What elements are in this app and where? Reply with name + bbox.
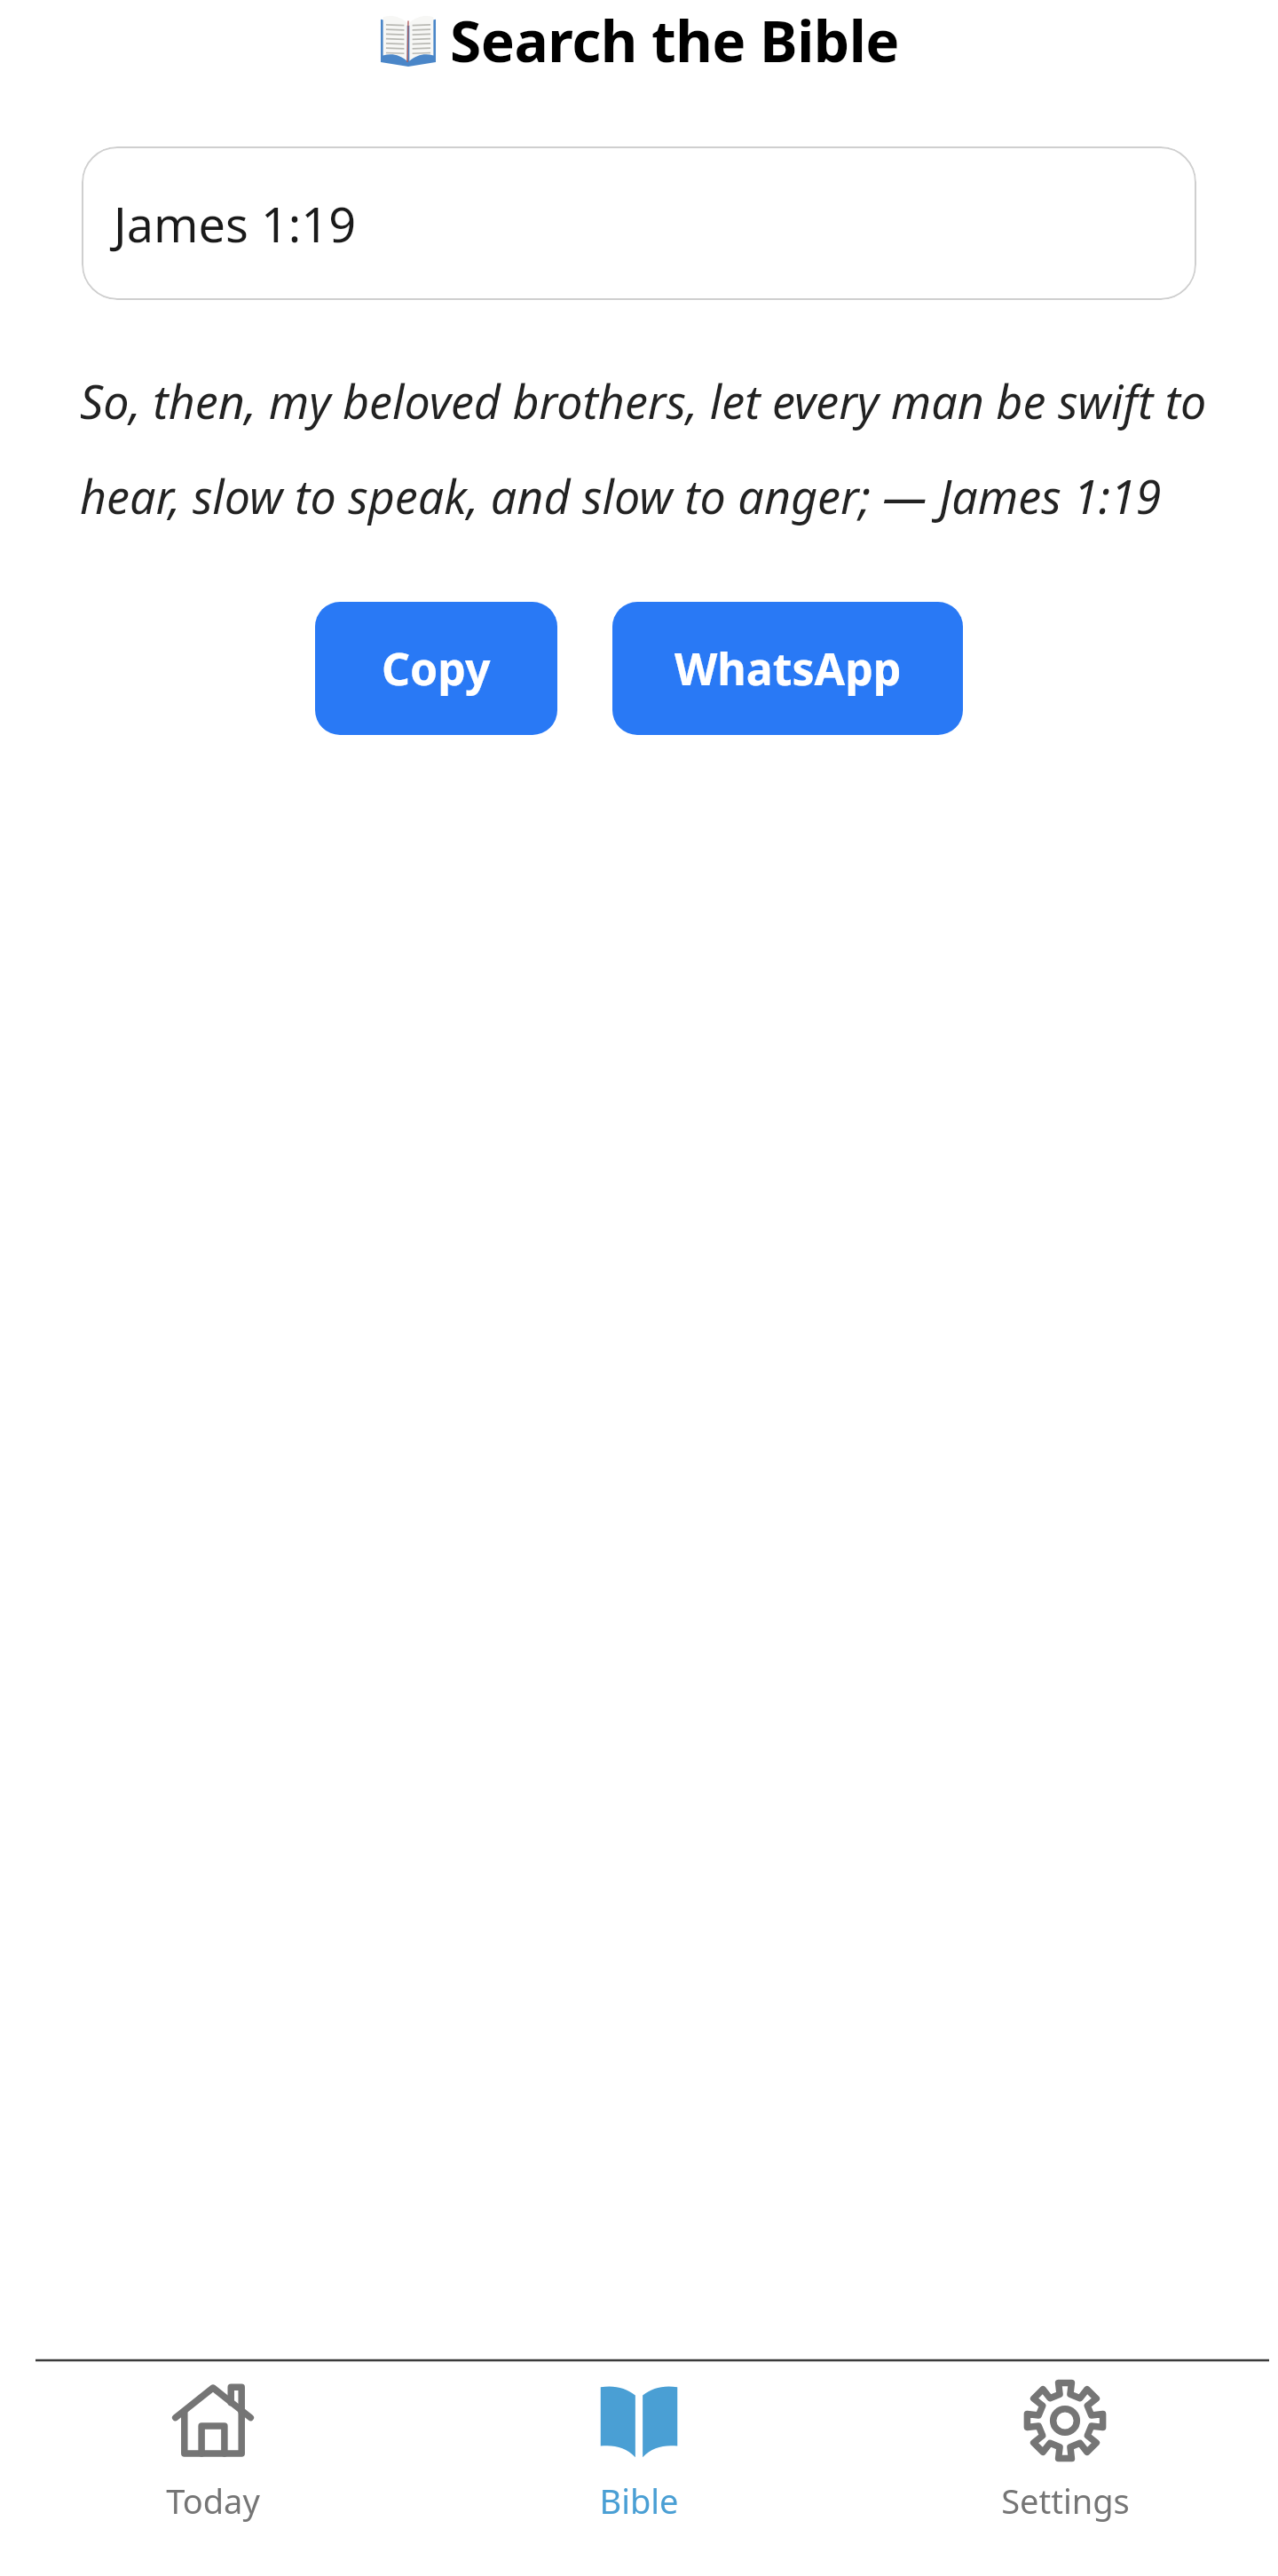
button[interactable]: Bible [426,2383,852,2576]
staticText: James 1:19 [114,191,357,257]
button[interactable]: WhatsApp [612,602,963,735]
staticText: Search the Bible [450,2,900,76]
button[interactable]: James 1:19 [82,146,1196,300]
button[interactable]: Copy [315,602,557,735]
staticText: Bible [599,2477,679,2524]
staticText: Today [166,2477,260,2524]
staticText: Copy [382,638,491,699]
staticText: Settings [1001,2477,1130,2524]
staticText: So, then, my beloved brothers, let every… [80,369,1207,527]
button[interactable]: Today [0,2383,426,2576]
staticText: WhatsApp [674,638,902,699]
button[interactable]: Settings [852,2383,1278,2576]
